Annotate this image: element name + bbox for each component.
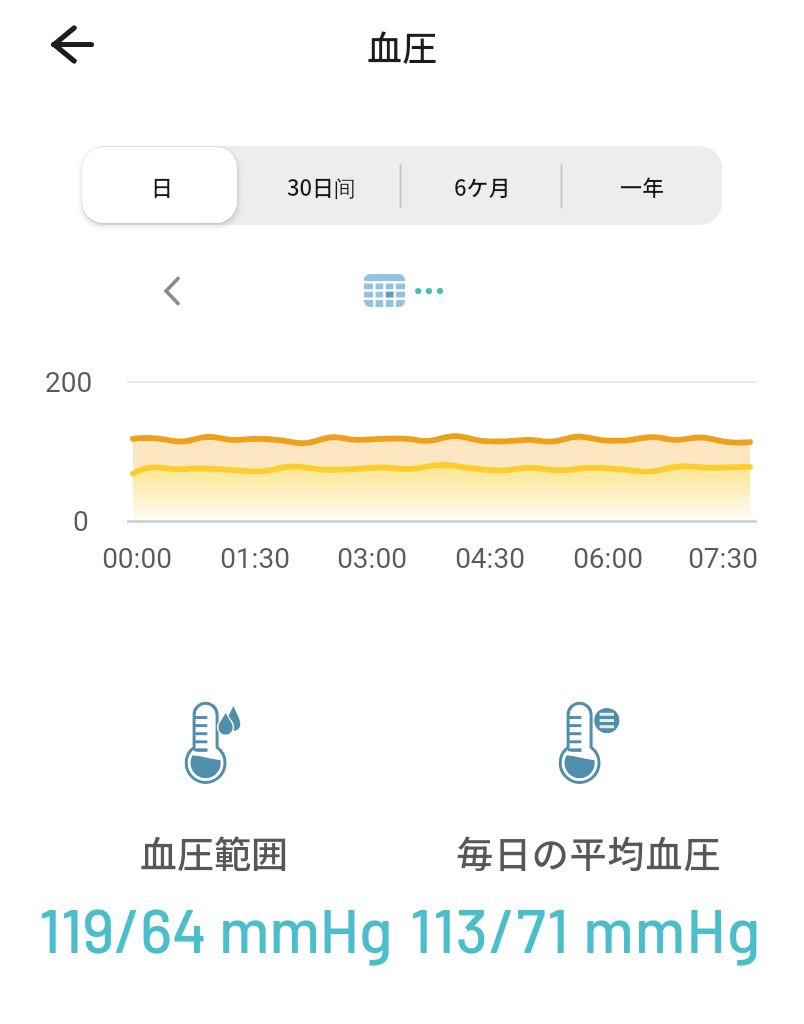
staticText: 06:00 — [573, 542, 643, 575]
staticText: 00:00 — [102, 542, 172, 575]
staticText: 血圧範囲 — [140, 825, 288, 879]
staticText: 血圧 — [367, 20, 438, 71]
staticText: 119/64 mmHg — [39, 892, 393, 965]
button[interactable]: Previous day — [145, 264, 199, 318]
button[interactable]: Blood pressure range — [160, 690, 270, 790]
button[interactable]: Daily average blood pressure — [534, 690, 644, 790]
staticText: 200 — [45, 366, 93, 399]
staticText: 03:00 — [337, 542, 407, 575]
staticText: 毎日の平均血圧 — [456, 825, 722, 879]
button[interactable]: 日 — [82, 146, 242, 225]
button[interactable]: 6ケ月 — [402, 146, 562, 225]
staticText: 07:30 — [688, 542, 758, 575]
button[interactable]: 30日间 — [242, 146, 402, 225]
staticText: 01:30 — [220, 542, 290, 575]
staticText: 0 — [73, 505, 89, 538]
staticText: 113/71 mmHg — [410, 892, 762, 965]
staticText: 日 — [151, 170, 174, 202]
staticText: 6ケ月 — [454, 170, 511, 202]
button[interactable]: Back — [30, 17, 86, 73]
button[interactable]: Calendar — [356, 266, 452, 314]
staticText: 30日间 — [287, 170, 357, 202]
staticText: 04:30 — [455, 542, 525, 575]
button[interactable]: 一年 — [562, 146, 722, 225]
staticText: 一年 — [620, 170, 665, 202]
